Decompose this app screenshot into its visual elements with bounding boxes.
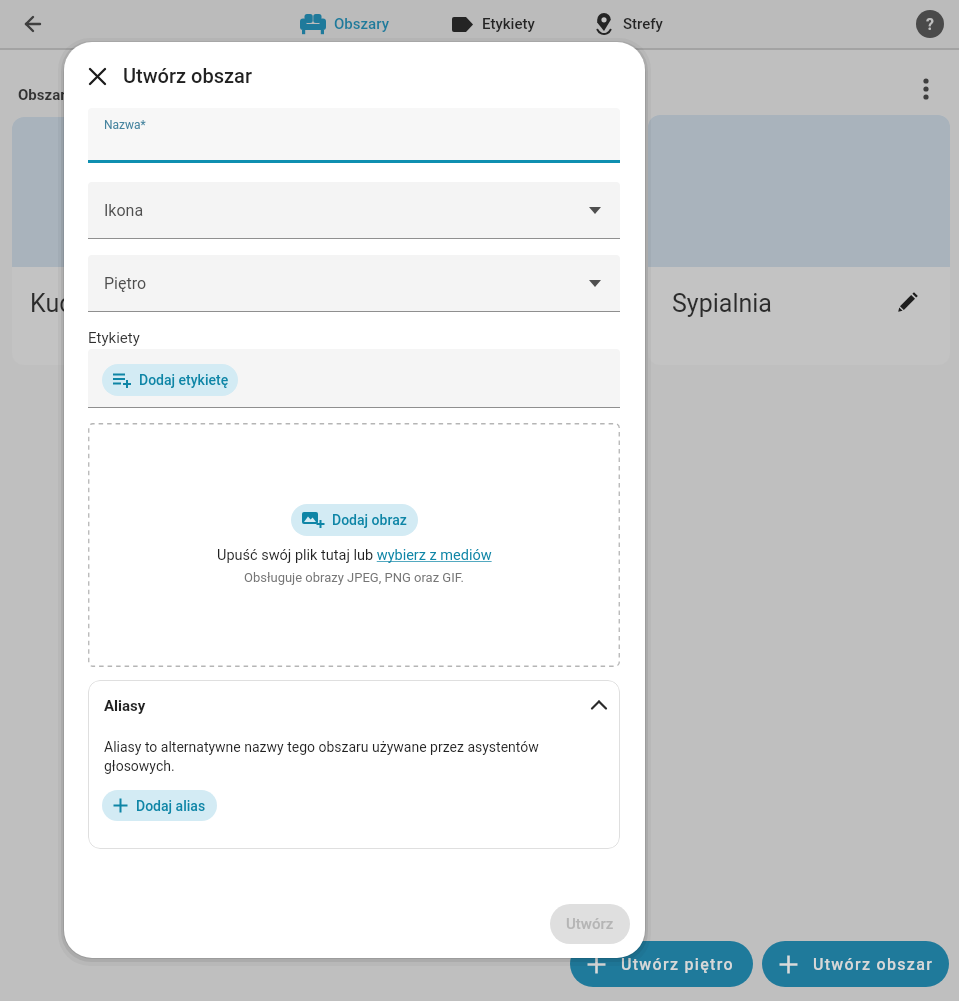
staticText: Ikona [104, 201, 144, 220]
button[interactable] [587, 694, 611, 718]
staticText: Dodaj etykietę [139, 372, 229, 388]
button[interactable]: Dodaj etykietę [102, 364, 238, 396]
staticText: Strefy [623, 15, 663, 33]
staticText: Etykiety [482, 15, 535, 33]
staticText: głosowych. [104, 758, 175, 774]
button[interactable]: Kuchnia [12, 117, 192, 365]
staticText: Obsługuje obrazy JPEG, PNG oraz GIF. [244, 570, 464, 585]
button[interactable]: Obszary [300, 8, 389, 40]
staticText: Aliasy [104, 697, 146, 715]
button[interactable]: Utwórz piętro [570, 941, 753, 987]
staticText: Kuchnia [30, 289, 120, 318]
staticText: Obszary [334, 15, 389, 33]
staticText: Aliasy to alternatywne nazwy tego obszar… [104, 739, 539, 755]
button[interactable]: Dodaj obraz [291, 504, 418, 536]
button[interactable]: Piętro [88, 255, 620, 312]
staticText: ? [926, 15, 934, 34]
button[interactable]: Dodaj alias [102, 790, 217, 821]
button[interactable]: Ikona [88, 182, 620, 239]
button[interactable]: Nazwa* [88, 108, 620, 163]
staticText: Piętro [104, 274, 147, 293]
staticText: Dodaj obraz [332, 512, 407, 528]
staticText: Utwórz piętro [621, 955, 734, 974]
button[interactable]: ? [916, 10, 944, 38]
button[interactable]: Utwórz obszar [762, 941, 949, 987]
button[interactable]: Dodaj etykietę [88, 349, 620, 408]
staticText: Etykiety [88, 329, 140, 347]
staticText: Obszar [18, 86, 66, 104]
staticText: Utwórz obszar [123, 64, 252, 87]
button[interactable]: Sypialnia [648, 115, 950, 365]
button[interactable]: Strefy [594, 8, 663, 40]
staticText: Nazwa* [104, 118, 146, 132]
button[interactable]: Etykiety [452, 8, 535, 40]
staticText: Sypialnia [672, 289, 772, 318]
staticText: Utwórz [566, 915, 614, 933]
staticText: Upuść swój plik tutaj lub wybierz z medi… [217, 547, 492, 564]
staticText: Dodaj alias [136, 798, 206, 814]
button[interactable] [21, 12, 45, 36]
button[interactable] [89, 68, 106, 85]
button[interactable]: Utwórz [550, 904, 630, 944]
staticText: Utwórz obszar [813, 955, 934, 974]
